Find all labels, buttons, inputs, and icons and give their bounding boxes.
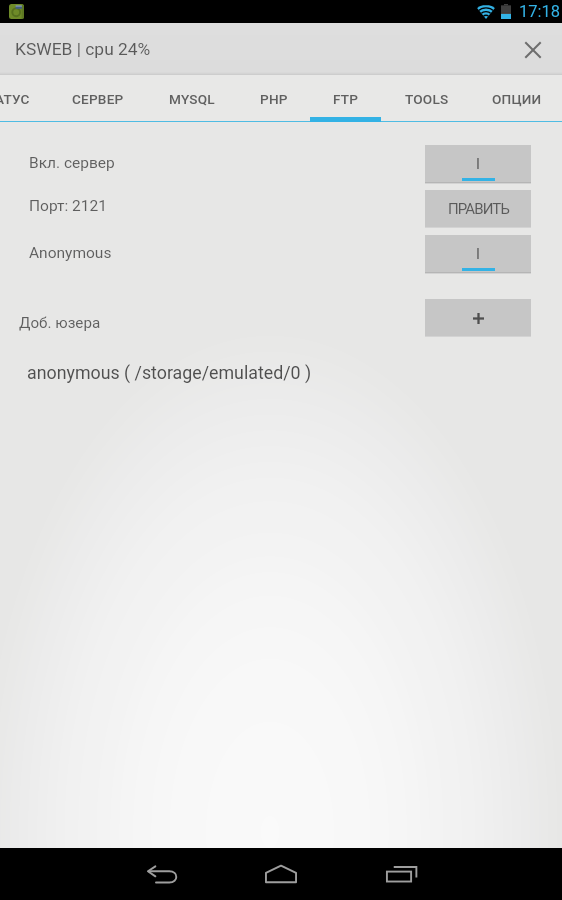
staticText: ПРАВИТЬ	[448, 200, 509, 218]
staticText: MYSQL	[169, 91, 215, 107]
button[interactable]: Close	[506, 23, 562, 75]
staticText: Вкл. сервер	[29, 154, 115, 172]
button[interactable]: Toggle	[425, 235, 531, 272]
staticText: I	[476, 246, 480, 263]
staticText: 17:18	[519, 2, 561, 21]
staticText: TOOLS	[405, 91, 449, 107]
button[interactable]: FTP	[313, 75, 379, 122]
staticText: FTP	[333, 91, 359, 107]
button[interactable]: Toggle	[425, 145, 531, 182]
staticText: I	[476, 156, 480, 173]
button[interactable]: TOOLS	[389, 75, 465, 122]
button[interactable]: Home	[241, 848, 321, 900]
staticText: СЕРВЕР	[72, 91, 124, 107]
staticText: PHP	[260, 91, 288, 107]
button[interactable]: ОПЦИИ	[475, 75, 559, 122]
staticText: anonymous ( /storage/emulated/0 )	[27, 362, 312, 383]
button[interactable]: Recent apps	[361, 848, 441, 900]
staticText: Доб. юзера	[19, 314, 101, 332]
staticText: Anonymous	[29, 244, 112, 262]
staticText: Порт: 2121	[29, 197, 107, 215]
staticText: ОПЦИИ	[492, 91, 542, 107]
button[interactable]: СЕРВЕР	[55, 75, 141, 122]
button[interactable]: PHP	[241, 75, 307, 122]
button[interactable]: АТУС	[0, 75, 40, 122]
button[interactable]: MYSQL	[151, 75, 233, 122]
staticText: АТУС	[0, 91, 30, 107]
button[interactable]: Add user	[425, 299, 531, 336]
button[interactable]: ПРАВИТЬ	[425, 190, 531, 227]
staticText: KSWEB | cpu 24%	[15, 39, 151, 59]
button[interactable]: Back	[122, 848, 202, 900]
